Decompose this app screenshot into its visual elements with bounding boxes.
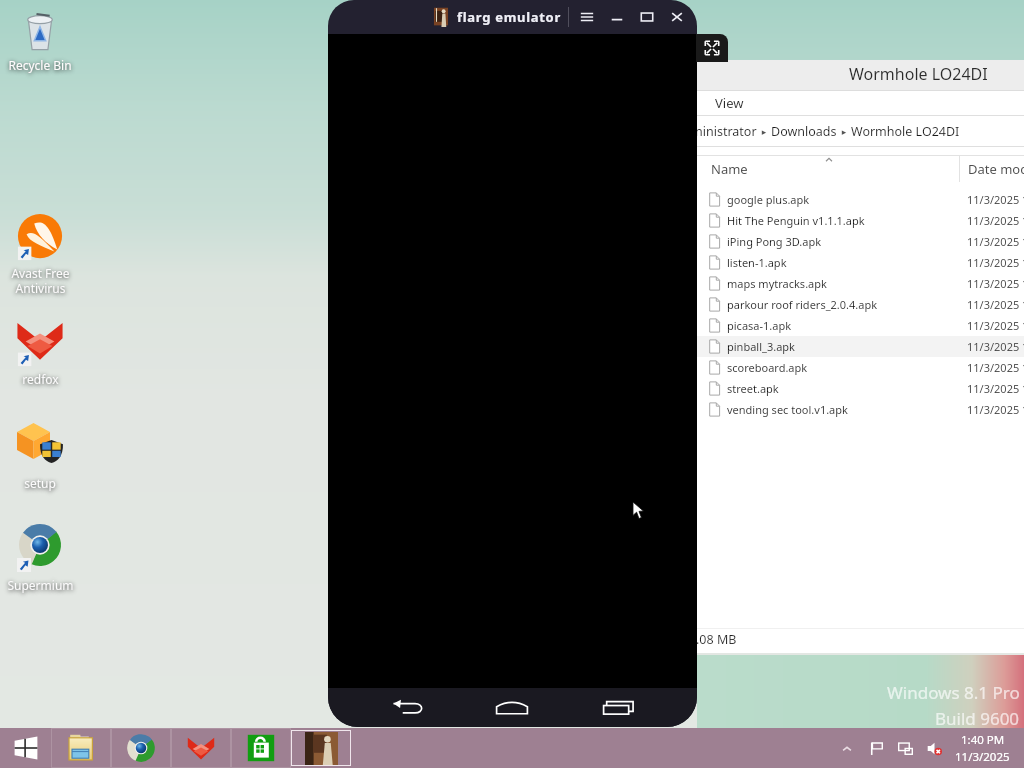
staticText: picasa-1.apk xyxy=(727,318,792,333)
staticText: google plus.apk xyxy=(727,192,810,207)
button[interactable]: Back xyxy=(386,688,430,727)
staticText: .08 MB xyxy=(696,631,737,648)
staticText: 11/3/2025 1 xyxy=(967,360,1024,375)
button[interactable]: vending sec tool.v1.apk xyxy=(695,399,1024,420)
button[interactable]: Name xyxy=(695,156,959,182)
button[interactable]: redfox xyxy=(171,728,231,768)
button[interactable]: flarg emulator xyxy=(291,730,351,766)
staticText: 11/3/2025 1 xyxy=(967,276,1024,291)
staticText: Avast Free Antivirus xyxy=(11,265,70,296)
button[interactable]: Start xyxy=(0,728,51,768)
staticText: 11/3/2025 1 xyxy=(967,213,1024,228)
button[interactable]: iPing Pong 3D.apk xyxy=(695,231,1024,252)
button[interactable]: scoreboard.apk xyxy=(695,357,1024,378)
staticText: 1:40 PM xyxy=(961,732,1005,748)
button[interactable]: Wormhole LO24DI xyxy=(851,123,960,140)
staticText: 11/3/2025 1 xyxy=(967,297,1024,312)
button[interactable]: street.apk xyxy=(695,378,1024,399)
button[interactable]: Home xyxy=(490,688,534,727)
staticText: parkour roof riders_2.0.4.apk xyxy=(727,297,878,312)
staticText: scoreboard.apk xyxy=(727,360,808,375)
staticText: 11/3/2025 1 xyxy=(967,318,1024,333)
staticText: Wormhole LO24DI xyxy=(851,123,960,140)
staticText: Recycle Bin xyxy=(8,57,72,73)
staticText: 11/3/2025 xyxy=(955,749,1010,765)
staticText: street.apk xyxy=(727,381,779,396)
staticText: Date modified xyxy=(968,160,1024,178)
staticText: Name xyxy=(711,160,748,178)
staticText: setup xyxy=(24,475,56,491)
button[interactable]: Recents xyxy=(597,688,641,727)
button[interactable]: Date modified xyxy=(960,156,1024,182)
staticText: ▸ xyxy=(757,125,771,137)
button[interactable]: Close xyxy=(666,6,688,28)
button[interactable]: Supermium xyxy=(1,524,79,593)
button[interactable]: picasa-1.apk xyxy=(695,315,1024,336)
button[interactable]: Downloads xyxy=(771,123,837,140)
button[interactable]: parkour roof riders_2.0.4.apk xyxy=(695,294,1024,315)
staticText: 11/3/2025 1 xyxy=(967,192,1024,207)
staticText: Avast Free Antivirus xyxy=(11,265,70,296)
button[interactable]: redfox xyxy=(1,320,79,387)
button[interactable]: Store xyxy=(231,728,291,768)
staticText: 11/3/2025 1 xyxy=(967,381,1024,396)
staticText: redfox xyxy=(22,371,59,387)
staticText: Downloads xyxy=(771,123,837,140)
staticText: 11/3/2025 1 xyxy=(967,255,1024,270)
button[interactable]: Avast Free Antivirus xyxy=(1,214,79,296)
staticText: 11/3/2025 1 xyxy=(967,402,1024,417)
staticText: maps mytracks.apk xyxy=(727,276,827,291)
staticText: iPing Pong 3D.apk xyxy=(727,234,822,249)
button[interactable]: setup xyxy=(1,422,79,491)
button[interactable]: Minimize xyxy=(606,6,628,28)
staticText: View xyxy=(715,94,744,112)
button[interactable]: Maximize xyxy=(636,6,658,28)
staticText: Wormhole LO24DI xyxy=(849,63,988,85)
button[interactable]: File Explorer xyxy=(51,728,111,768)
staticText: Supermium xyxy=(7,577,74,593)
button[interactable]: Recycle Bin xyxy=(1,10,79,73)
staticText: Supermium xyxy=(7,577,74,593)
staticText: redfox xyxy=(22,371,59,387)
staticText: Recycle Bin xyxy=(8,57,72,73)
staticText: Build 9600 xyxy=(935,707,1020,730)
staticText: Windows 8.1 Pro xyxy=(887,681,1020,704)
button[interactable]: Fullscreen xyxy=(696,34,728,62)
staticText: setup xyxy=(24,475,56,491)
button[interactable]: google plus.apk xyxy=(695,189,1024,210)
staticText: Hit The Penguin v1.1.1.apk xyxy=(727,213,865,228)
button[interactable]: Hit The Penguin v1.1.1.apk xyxy=(695,210,1024,231)
button[interactable]: Menu xyxy=(576,6,598,28)
button[interactable]: View xyxy=(695,91,1024,115)
staticText: 11/3/2025 1 xyxy=(967,234,1024,249)
staticText: ▸ xyxy=(837,125,851,137)
staticText: 11/3/2025 1 xyxy=(967,339,1024,354)
button[interactable]: maps mytracks.apk xyxy=(695,273,1024,294)
staticText: pinball_3.apk xyxy=(727,339,795,354)
button[interactable]: listen-1.apk xyxy=(695,252,1024,273)
button[interactable]: Supermium xyxy=(111,728,171,768)
staticText: listen-1.apk xyxy=(727,255,787,270)
staticText: ninistrator xyxy=(695,123,757,140)
staticText: vending sec tool.v1.apk xyxy=(727,402,848,417)
button[interactable]: ninistrator xyxy=(695,123,757,140)
staticText: flarg emulator xyxy=(457,8,561,26)
button[interactable]: pinball_3.apk xyxy=(695,336,1024,357)
